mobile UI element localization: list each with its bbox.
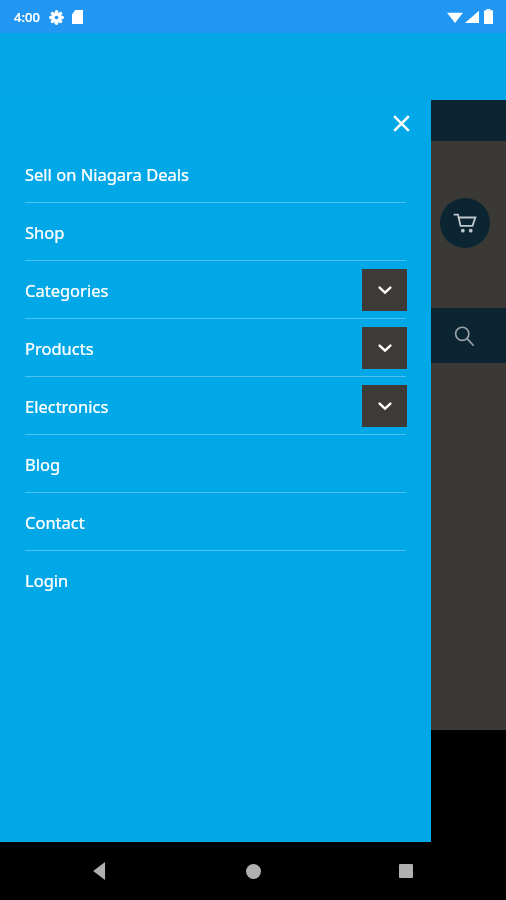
button[interactable]: Products [0,319,431,376]
button[interactable]: Sell on Niagara Deals [0,145,431,202]
staticText: Contact [25,511,85,533]
staticText: Categories [25,279,109,301]
staticText: 4:00 [14,8,40,26]
button[interactable]: Electronics [0,377,431,434]
staticText: Login [25,569,69,591]
button[interactable]: Expand Categories [362,269,407,311]
button[interactable]: Close menu [383,105,419,141]
button[interactable]: Contact [0,493,431,550]
button[interactable]: Shop [0,203,431,260]
button[interactable]: Recents [386,851,426,891]
staticText: Sell on Niagara Deals [25,163,189,185]
staticText: Products [25,337,94,359]
button[interactable]: Login [0,551,431,608]
button[interactable]: Back [80,851,120,891]
button[interactable]: Expand Products [362,327,407,369]
button[interactable]: Cart [440,198,490,248]
button[interactable]: Categories [0,261,431,318]
button[interactable]: Blog [0,435,431,492]
button[interactable]: Home [233,851,273,891]
button[interactable]: Search [450,322,478,350]
button[interactable]: Expand Electronics [362,385,407,427]
staticText: Shop [25,221,65,243]
staticText: Electronics [25,395,109,417]
staticText: Blog [25,453,61,475]
